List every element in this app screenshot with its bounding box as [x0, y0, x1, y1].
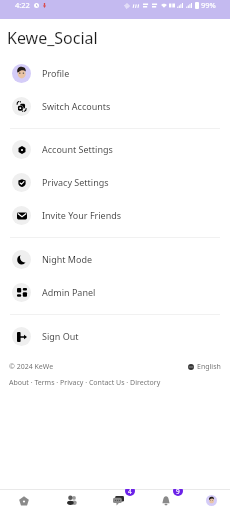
button[interactable]: Profile — [0, 57, 230, 90]
button[interactable]: Night Mode — [0, 243, 230, 276]
staticText: English — [197, 362, 221, 372]
button[interactable]: Account Settings — [0, 133, 230, 166]
button[interactable]: Friends — [48, 489, 94, 512]
staticText: Sign Out — [42, 330, 79, 342]
staticText: Kewe_Social — [7, 27, 98, 49]
button[interactable]: Account — [188, 489, 230, 512]
staticText: Night Mode — [42, 253, 93, 265]
staticText: 4:22 — [15, 0, 30, 10]
button[interactable]: Privacy Settings — [0, 166, 230, 199]
button[interactable]: Home — [1, 489, 47, 512]
button[interactable]: Switch Accounts — [0, 90, 230, 123]
staticText: Profile — [42, 67, 70, 79]
staticText: Invite Your Friends — [42, 209, 122, 221]
staticText: 4 — [128, 489, 132, 496]
staticText: About · Terms · Privacy · Contact Us · D… — [9, 378, 161, 388]
button[interactable]: Notifications — [143, 489, 189, 512]
staticText: 99% — [201, 0, 216, 10]
staticText: Privacy Settings — [42, 176, 109, 188]
staticText: Account Settings — [42, 143, 113, 155]
staticText: 9 — [176, 489, 180, 496]
button[interactable]: Invite Your Friends — [0, 199, 230, 232]
staticText: Switch Accounts — [42, 100, 111, 112]
button[interactable]: English — [188, 362, 221, 372]
button[interactable]: Messages — [95, 489, 141, 512]
button[interactable]: Sign Out — [0, 320, 230, 353]
staticText: © 2024 KeWe — [9, 362, 54, 372]
button[interactable]: Admin Panel — [0, 276, 230, 309]
staticText: Admin Panel — [42, 286, 96, 298]
